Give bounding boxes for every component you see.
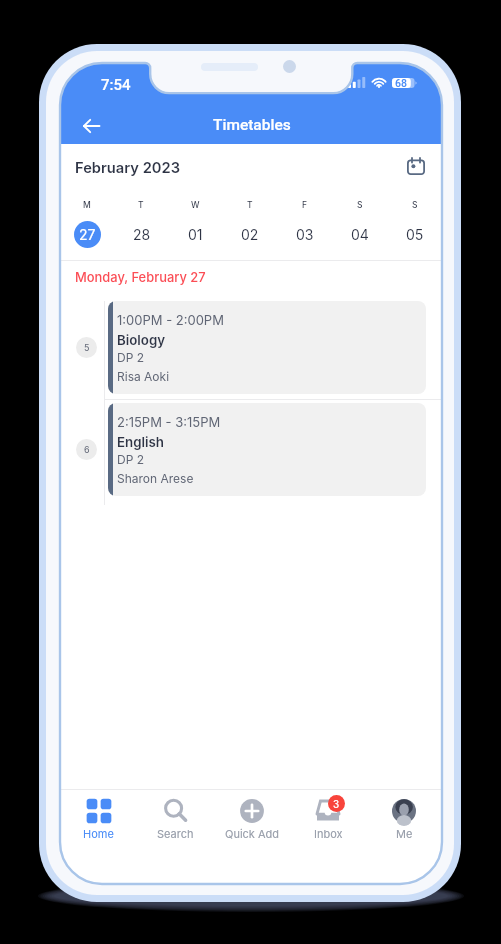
staticText: 2:15PM - 3:15PM — [117, 414, 221, 430]
staticText: Me — [396, 827, 413, 840]
staticText: 01 — [188, 226, 203, 243]
staticText: Biology — [117, 332, 166, 348]
button[interactable]: Back — [74, 109, 108, 143]
staticText: 03 — [296, 226, 314, 243]
staticText: DP 2 — [117, 350, 145, 365]
button[interactable]: 6 — [60, 403, 442, 505]
staticText: Timetables — [213, 116, 291, 134]
staticText: Inbox — [314, 827, 343, 840]
staticText: 3 — [333, 798, 340, 810]
staticText: 02 — [241, 226, 259, 243]
staticText: S — [412, 200, 418, 210]
staticText: 6 — [84, 444, 90, 455]
staticText: 5 — [84, 342, 90, 353]
staticText: W — [191, 200, 200, 210]
staticText: DP 2 — [117, 452, 145, 467]
staticText: February 2023 — [75, 159, 181, 177]
staticText: 68 — [395, 77, 407, 87]
staticText: Home — [83, 827, 114, 840]
button[interactable]: 02 — [236, 221, 263, 248]
button[interactable]: Home — [60, 789, 137, 884]
staticText: 04 — [351, 226, 369, 243]
button[interactable]: Quick Add — [214, 789, 290, 884]
button[interactable]: 01 — [182, 221, 209, 248]
staticText: S — [357, 200, 363, 210]
button[interactable]: 04 — [346, 221, 373, 248]
button[interactable]: 05 — [401, 221, 428, 248]
button[interactable]: 3 — [290, 789, 366, 884]
staticText: Search — [157, 827, 194, 840]
button[interactable]: Me — [366, 789, 442, 884]
staticText: 28 — [133, 226, 151, 243]
staticText: 27 — [79, 226, 96, 243]
staticText: 05 — [406, 226, 424, 243]
staticText: M — [83, 200, 91, 210]
button[interactable]: 27 — [74, 221, 101, 248]
button[interactable]: 5 — [60, 301, 442, 403]
button[interactable]: 03 — [291, 221, 318, 248]
staticText: Sharon Arese — [117, 471, 194, 486]
staticText: English — [117, 434, 164, 450]
staticText: 1:00PM - 2:00PM — [117, 312, 224, 328]
staticText: T — [138, 200, 144, 210]
button[interactable]: 28 — [128, 221, 155, 248]
staticText: 7:54 — [101, 76, 131, 94]
staticText: Risa Aoki — [117, 369, 170, 384]
button[interactable]: Pick a date — [399, 149, 433, 183]
staticText: Monday, February 27 — [75, 270, 206, 286]
staticText: T — [247, 200, 253, 210]
button[interactable]: Search — [137, 789, 214, 884]
staticText: F — [302, 200, 308, 210]
staticText: Quick Add — [225, 827, 280, 840]
